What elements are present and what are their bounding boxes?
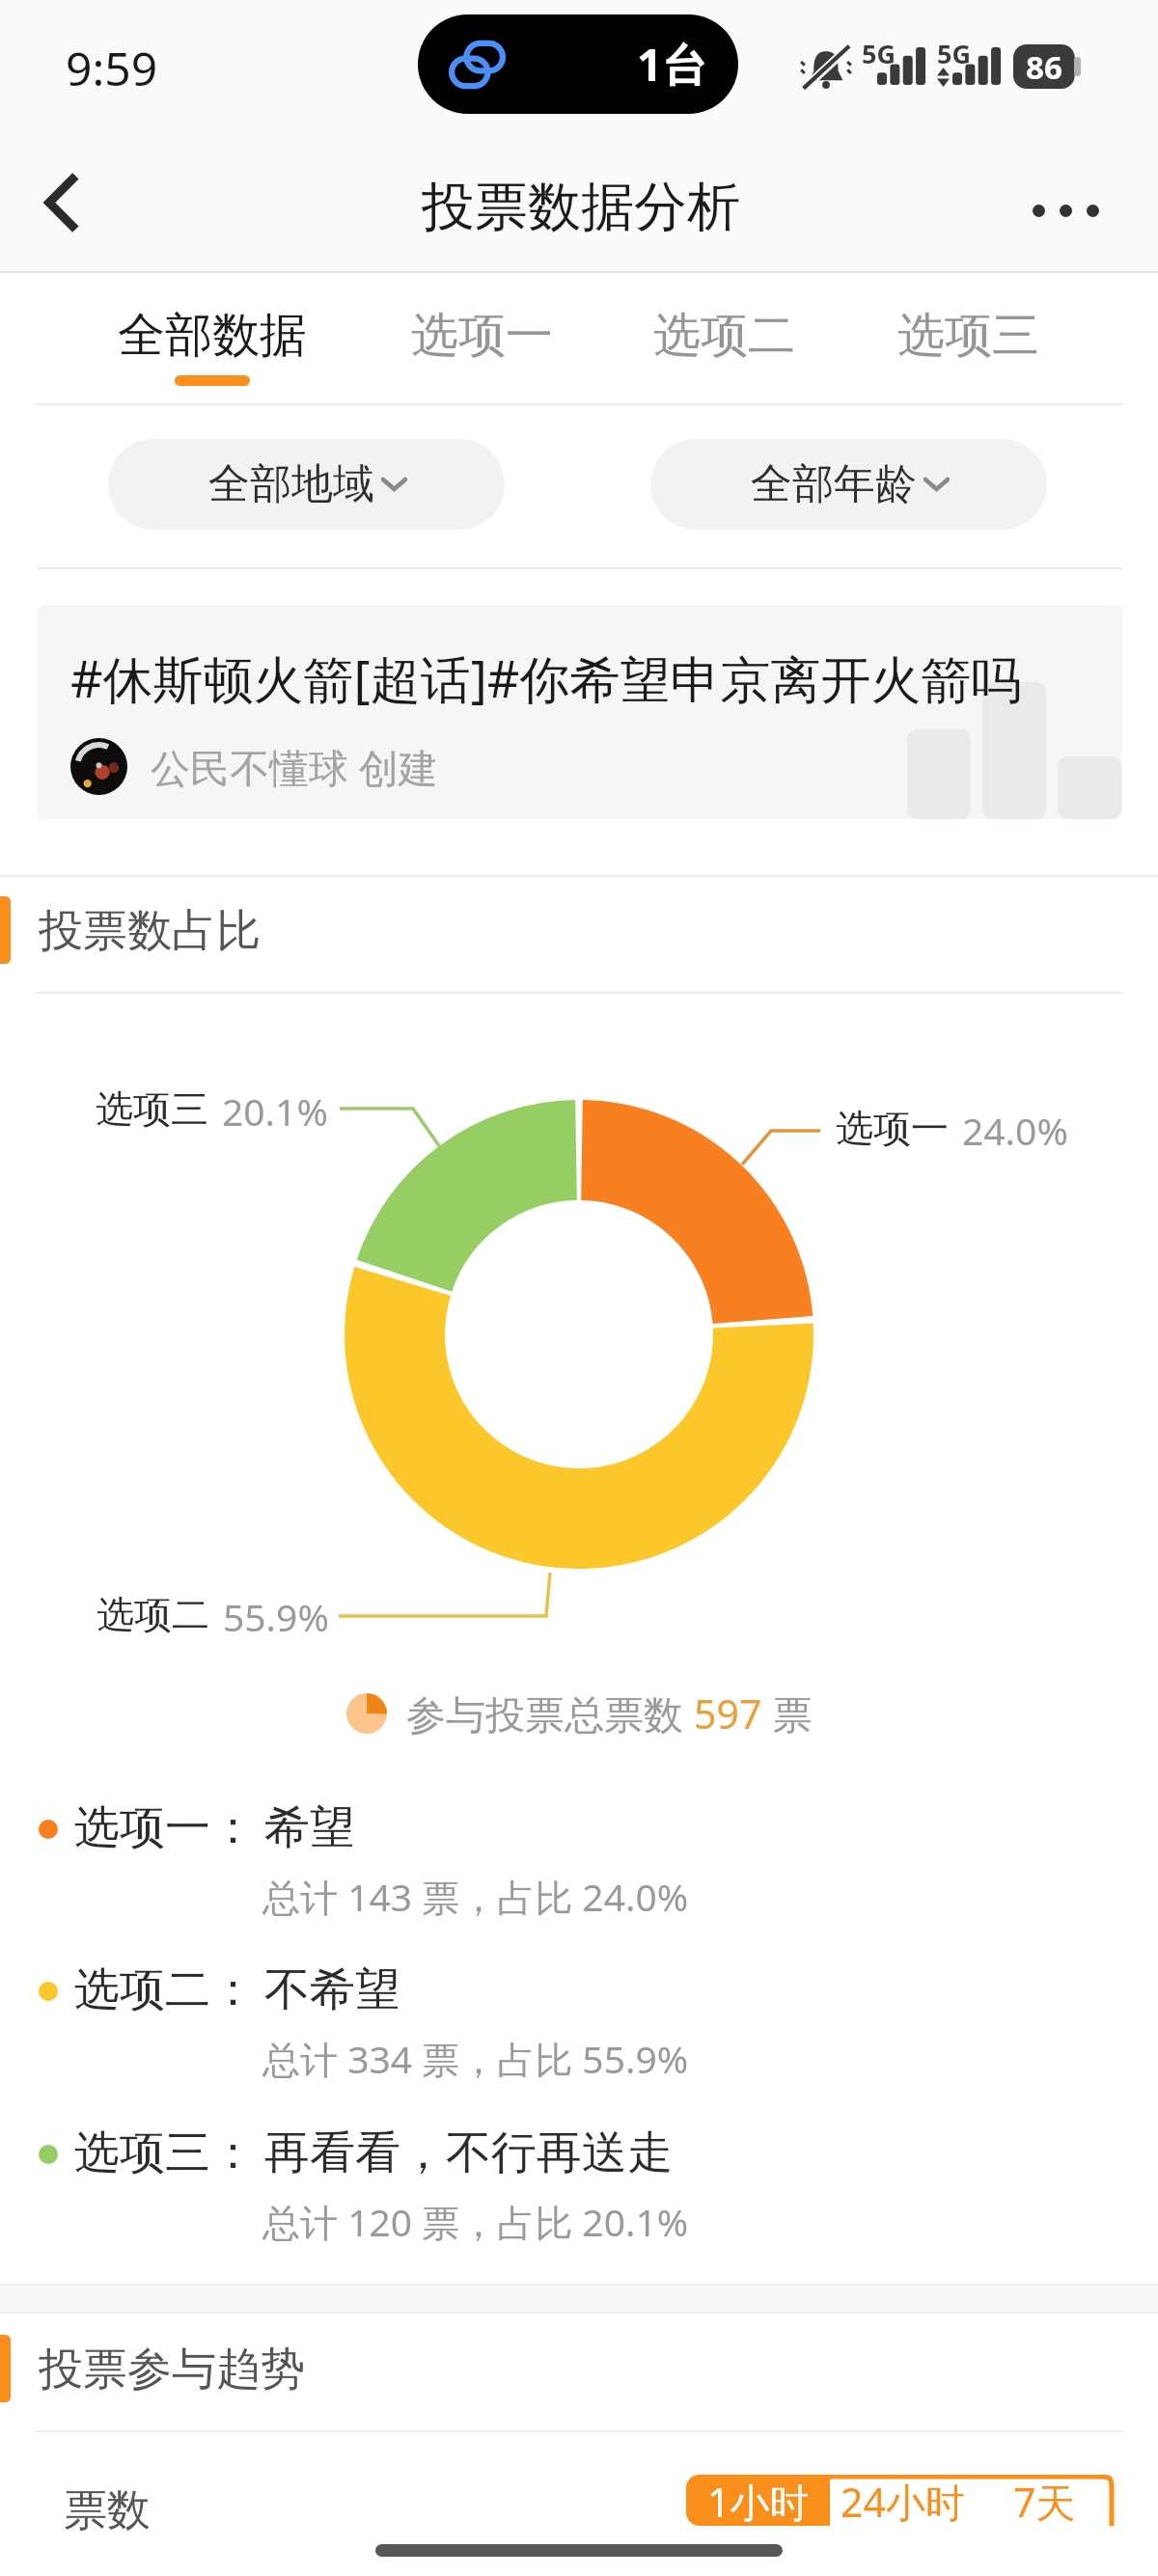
staticText: 总计 143 票，占比 24.0% [262, 1871, 689, 1922]
staticText: 参与投票总票数 [406, 1686, 694, 1740]
button[interactable]: 选项二 [637, 275, 812, 406]
staticText: 全部年龄 [751, 458, 917, 510]
button[interactable]: Back [0, 123, 121, 273]
staticText: 1台 [637, 34, 707, 95]
button[interactable]: 选项三 [881, 275, 1055, 406]
staticText: 投票数占比 [39, 903, 261, 959]
staticText: 公民不懂球 创建 [151, 740, 438, 794]
staticText: #休斯顿火箭[超话]#你希望申京离开火箭吗 [70, 644, 1022, 712]
button[interactable]: 选项一 [392, 275, 571, 406]
staticText: 选项一 [411, 306, 553, 366]
staticText: 选项二 [653, 306, 795, 366]
staticText: 86 [1026, 45, 1062, 89]
staticText: 7天 [1013, 2475, 1076, 2526]
staticText: 选项二： [74, 1961, 256, 2018]
staticText: 总计 334 票，占比 55.9% [262, 2033, 689, 2084]
staticText: 选项三 [96, 1085, 208, 1133]
staticText: 55.9% [223, 1591, 329, 1642]
staticText: 希望 [264, 1799, 355, 1856]
staticText: 9:59 [66, 37, 158, 99]
staticText: 24小时 [841, 2475, 965, 2526]
button[interactable]: 1小时 [686, 2475, 830, 2526]
staticText: 票 [762, 1686, 813, 1740]
staticText: 5G [937, 36, 971, 71]
staticText: 票数 [64, 2483, 151, 2538]
staticText: 选项三： [74, 2124, 256, 2181]
staticText: 全部地域 [208, 458, 374, 510]
staticText: 597 [694, 1686, 762, 1740]
button[interactable]: #休斯顿火箭[超话]#你希望申京离开火箭吗 [37, 605, 1122, 819]
staticText: 投票数据分析 [422, 174, 740, 240]
button[interactable]: 选项三： [0, 2106, 1158, 2251]
button[interactable]: 24小时 [830, 2475, 975, 2526]
staticText: 不希望 [264, 1961, 400, 2018]
button[interactable]: 选项二： [0, 1943, 1158, 2088]
button[interactable]: 选项一： [0, 1781, 1158, 1926]
staticText: 选项一： [74, 1799, 256, 1856]
button[interactable]: 7天 [975, 2475, 1114, 2526]
button[interactable]: 全部地域 [108, 439, 505, 530]
staticText: 全部数据 [118, 306, 307, 366]
staticText: 选项一 [836, 1105, 949, 1152]
button[interactable]: Connected device [418, 14, 738, 114]
staticText: 5G [862, 36, 896, 71]
staticText: 选项三 [897, 306, 1039, 366]
staticText: 选项二 [96, 1591, 209, 1638]
button[interactable]: 全部数据 [105, 275, 318, 406]
staticText: 1小时 [707, 2475, 810, 2526]
button[interactable]: More options [1023, 123, 1158, 273]
button[interactable]: 全部年龄 [650, 439, 1047, 530]
staticText: 24.0% [962, 1105, 1068, 1156]
staticText: 20.1% [222, 1085, 328, 1137]
staticText: 再看看，不行再送走 [264, 2124, 673, 2181]
staticText: 总计 120 票，占比 20.1% [262, 2196, 689, 2247]
staticText: 投票参与趋势 [39, 2342, 305, 2398]
